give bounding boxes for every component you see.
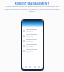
button[interactable] (22, 28, 43, 33)
button[interactable] (22, 43, 43, 48)
button[interactable] (22, 38, 43, 43)
staticText: ROBUST MANAGEMENT (0, 2, 64, 6)
button[interactable] (22, 48, 43, 53)
button[interactable] (22, 33, 43, 38)
staticText: Lorem ipsum dolor sit amet consectetur a… (4, 5, 60, 13)
